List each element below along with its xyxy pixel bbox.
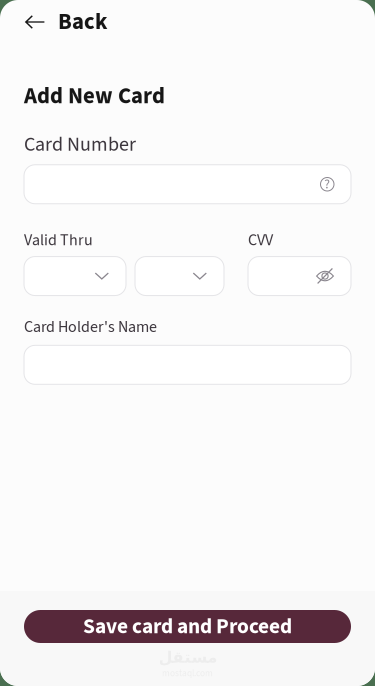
- staticText: ?: [324, 175, 330, 194]
- staticText: Valid Thru: [24, 229, 93, 252]
- staticText: CVV: [248, 229, 273, 252]
- staticText: Card Number: [24, 130, 136, 159]
- staticText: مستقل: [158, 648, 217, 667]
- staticText: Card Holder's Name: [24, 315, 157, 338]
- button[interactable]: Back: [0, 0, 375, 44]
- button[interactable]: Save card and Proceed: [24, 610, 351, 643]
- staticText: Add New Card: [24, 80, 165, 112]
- staticText: Back: [58, 6, 107, 38]
- staticText: Save card and Proceed: [83, 611, 292, 642]
